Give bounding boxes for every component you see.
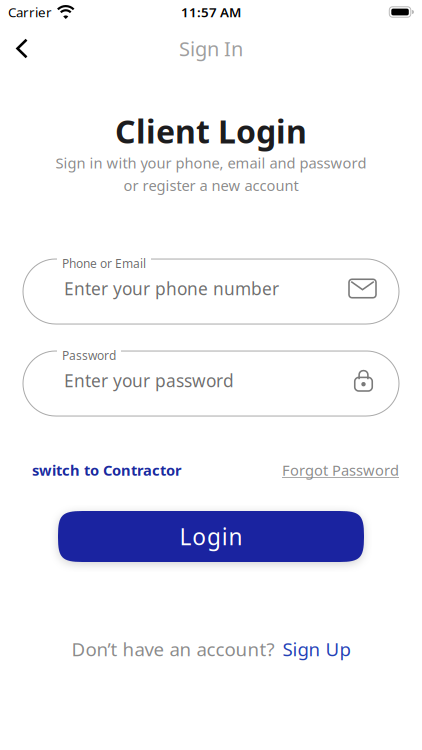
button[interactable]: Enter your password xyxy=(23,351,399,416)
button[interactable]: Login xyxy=(58,511,364,562)
button[interactable] xyxy=(16,38,28,58)
staticText: Enter your phone number xyxy=(64,277,279,300)
staticText: or register a new account xyxy=(123,175,298,195)
staticText: Don’t have an account? xyxy=(71,637,274,661)
staticText: Login xyxy=(179,521,243,551)
staticText: Sign Up xyxy=(282,637,350,661)
staticText: switch to Contractor xyxy=(32,460,182,480)
staticText: Password xyxy=(62,347,116,363)
button[interactable]: Sign Up xyxy=(282,637,350,661)
staticText: Enter your password xyxy=(64,369,234,392)
staticText: Client Login xyxy=(115,110,307,152)
staticText: Carrier xyxy=(8,3,52,21)
button[interactable]: Forgot Password xyxy=(282,460,399,480)
staticText: Forgot Password xyxy=(282,460,399,480)
staticText: 11:57 AM xyxy=(181,3,241,21)
staticText: Sign In xyxy=(179,35,243,62)
button[interactable]: switch to Contractor xyxy=(32,460,182,480)
staticText: Phone or Email xyxy=(62,255,146,271)
button[interactable]: Enter your phone number xyxy=(23,259,399,324)
staticText: Sign in with your phone, email and passw… xyxy=(55,153,366,172)
